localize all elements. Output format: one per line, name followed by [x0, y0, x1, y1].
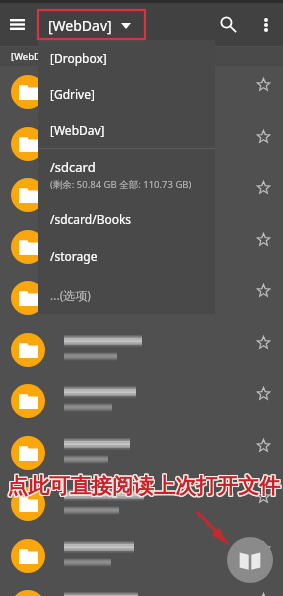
staticText: 点此可直接阅读上次打开文件	[6, 472, 279, 498]
button[interactable]: /storage	[38, 237, 215, 275]
button[interactable]: /sdcard/Books	[38, 200, 215, 237]
staticText: 点此可直接阅读上次打开文件	[8, 474, 281, 500]
button[interactable]: More options	[248, 3, 283, 46]
staticText: 点此可直接阅读上次打开文件	[7, 473, 280, 499]
staticText: [Dropbox]	[50, 50, 107, 66]
button[interactable]: Add to favorites	[243, 170, 283, 221]
staticText: [Gdrive]	[50, 86, 95, 102]
button[interactable]: Add to favorites	[243, 428, 283, 479]
button[interactable]: [Dropbox]	[38, 40, 215, 76]
button[interactable]: Add to favorites	[243, 325, 283, 376]
button[interactable]: Add to favorites	[0, 581, 283, 596]
button[interactable]: Add to favorites	[0, 169, 283, 221]
button[interactable]: Add to favorites	[243, 531, 283, 582]
staticText: (剩余: 50.84 GB 全部: 110.73 GB)	[50, 178, 192, 191]
button[interactable]: Add to favorites	[0, 375, 283, 427]
button[interactable]: Add to favorites	[0, 530, 283, 582]
staticText: /storage	[50, 248, 98, 264]
button[interactable]: Add to favorites	[243, 222, 283, 273]
staticText: /sdcard/Books	[50, 211, 132, 227]
staticText: 点此可直接阅读上次打开文件	[7, 474, 280, 500]
staticText: [WebDav]	[48, 16, 112, 35]
button[interactable]: Add to favorites	[0, 66, 283, 118]
staticText: ...(选项)	[50, 287, 91, 303]
button[interactable]: Add to favorites	[0, 324, 283, 376]
staticText: [WebDav]	[50, 122, 105, 138]
button[interactable]: Add to favorites	[243, 273, 283, 324]
button[interactable]: Add to favorites	[0, 272, 283, 324]
button[interactable]: [Gdrive]	[38, 76, 215, 112]
button[interactable]: Add to favorites	[0, 427, 283, 479]
button[interactable]: Add to favorites	[243, 67, 283, 118]
button[interactable]: Search	[208, 3, 248, 46]
button[interactable]: [WebDav]	[35, 10, 143, 40]
staticText: [WebDav]	[11, 50, 55, 63]
button[interactable]: Add to favorites	[0, 118, 283, 170]
staticText: 点此可直接阅读上次打开文件	[6, 473, 279, 499]
button[interactable]: Add to favorites	[243, 376, 283, 427]
button[interactable]: Navigation menu	[0, 3, 35, 46]
button[interactable]: [WebDav]	[38, 112, 215, 148]
button[interactable]: /sdcard	[38, 149, 215, 200]
button[interactable]: Add to favorites	[243, 582, 283, 596]
button[interactable]: Add to favorites	[0, 478, 283, 530]
button[interactable]: [WebDav]	[0, 47, 283, 66]
staticText: 点此可直接阅读上次打开文件	[8, 472, 281, 498]
staticText: 点此可直接阅读上次打开文件	[8, 473, 281, 499]
staticText: 点此可直接阅读上次打开文件	[6, 474, 279, 500]
staticText: 点此可直接阅读上次打开文件	[7, 472, 280, 498]
button[interactable]: ...(选项)	[38, 275, 215, 314]
button[interactable]: Add to favorites	[243, 479, 283, 530]
button[interactable]: Add to favorites	[243, 119, 283, 170]
button[interactable]: Open last read file	[227, 537, 273, 583]
button[interactable]: Add to favorites	[0, 221, 283, 273]
staticText: /sdcard	[50, 158, 96, 176]
